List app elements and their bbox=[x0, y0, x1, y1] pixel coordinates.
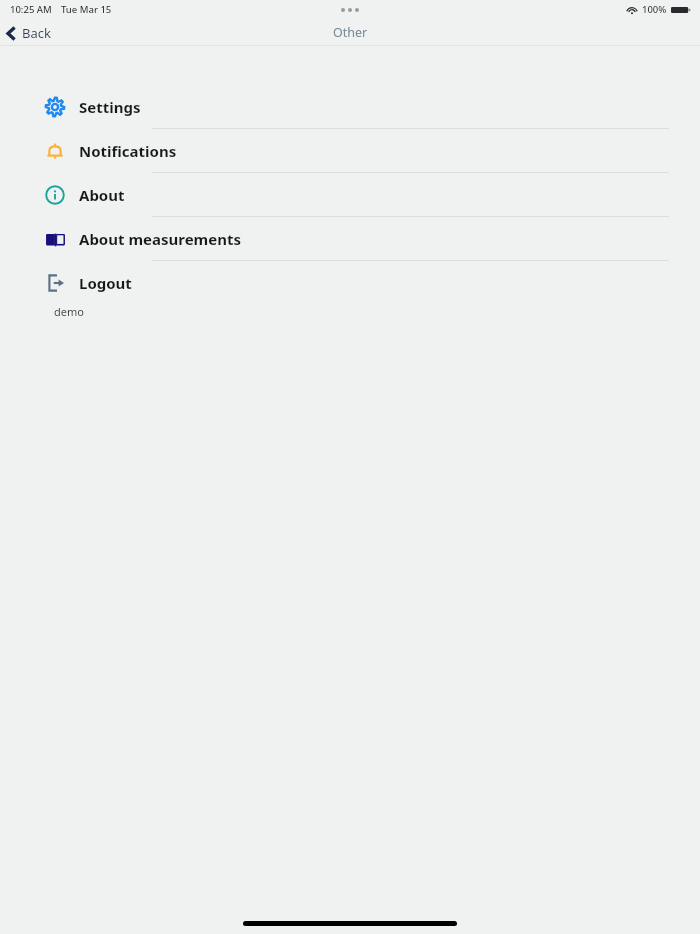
other: Settings bbox=[45, 97, 65, 117]
staticText: About bbox=[79, 185, 125, 205]
other: About measurements bbox=[45, 229, 66, 250]
button[interactable]: Settings bbox=[0, 85, 700, 128]
other: Notifications bbox=[45, 141, 65, 161]
staticText: Back bbox=[22, 24, 51, 42]
staticText: Other bbox=[333, 24, 368, 41]
button[interactable]: Back bbox=[0, 21, 61, 45]
staticText: demo bbox=[54, 304, 84, 319]
staticText: About measurements bbox=[79, 229, 241, 249]
other: Logout bbox=[45, 273, 65, 293]
button[interactable]: About bbox=[0, 173, 700, 216]
staticText: Notifications bbox=[79, 141, 177, 161]
staticText: Tue Mar 15 bbox=[61, 3, 112, 16]
staticText: Logout bbox=[79, 273, 132, 293]
staticText: 10:25 AM bbox=[10, 3, 52, 16]
staticText: Settings bbox=[79, 97, 141, 117]
other: About bbox=[45, 185, 65, 205]
button[interactable]: Notifications bbox=[0, 129, 700, 172]
button[interactable]: Logout bbox=[0, 261, 700, 304]
staticText: 100% bbox=[642, 3, 667, 16]
button[interactable]: About measurements bbox=[0, 217, 700, 260]
